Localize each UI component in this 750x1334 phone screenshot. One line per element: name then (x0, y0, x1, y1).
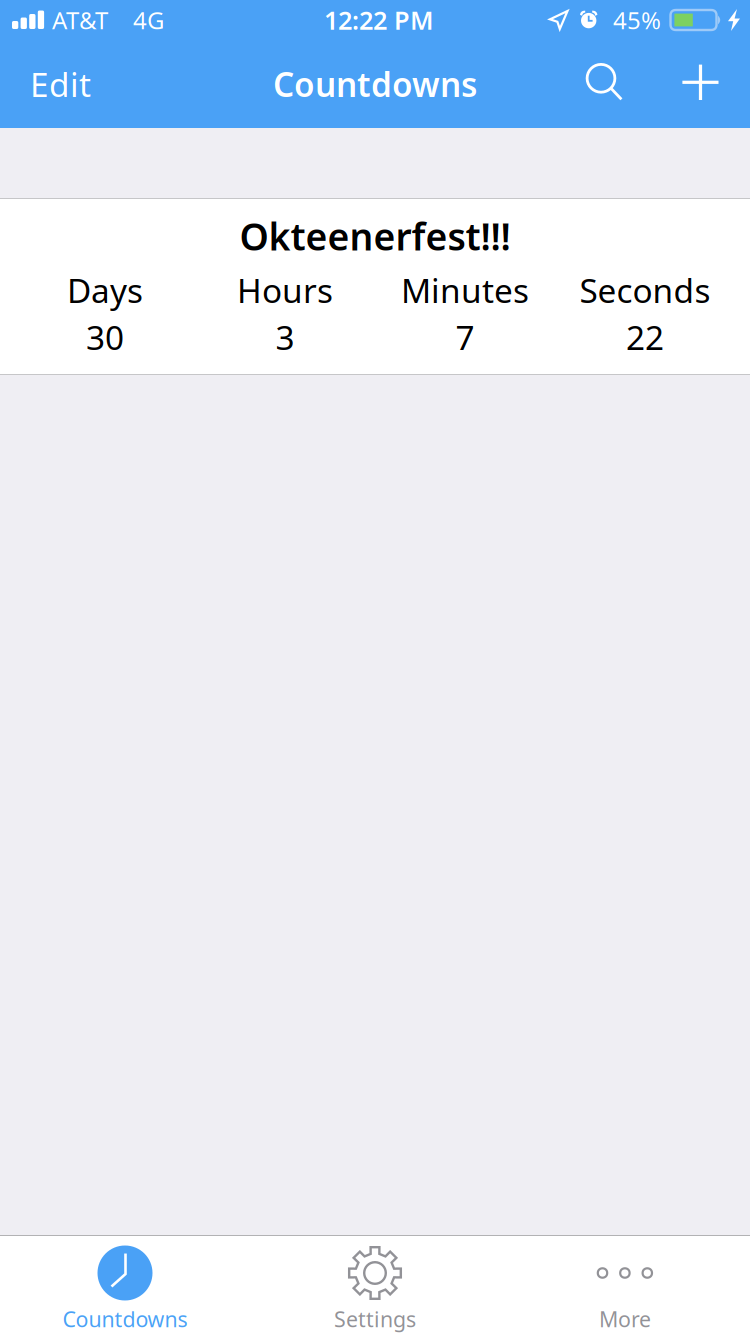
staticText: 22 (626, 315, 664, 359)
staticText: Okteenerfest!!! (239, 211, 510, 261)
staticText: Countdowns (273, 62, 477, 106)
button[interactable]: Countdowns (0, 1235, 250, 1334)
staticText: Settings (334, 1305, 416, 1333)
staticText: Minutes (401, 268, 529, 312)
staticText: AT&T (52, 4, 108, 36)
staticText: Days (67, 268, 143, 312)
button[interactable]: Settings (250, 1235, 500, 1334)
staticText: Countdowns (62, 1305, 187, 1333)
staticText: More (599, 1305, 651, 1333)
button[interactable]: Add Countdown (0, 40, 80, 128)
button[interactable]: Okteenerfest!!! (0, 199, 750, 374)
staticText: 3 (275, 315, 294, 359)
staticText: Seconds (579, 268, 710, 312)
staticText: Hours (237, 268, 333, 312)
button[interactable]: Edit (0, 40, 110, 128)
staticText: 7 (455, 315, 474, 359)
button[interactable]: More (500, 1235, 750, 1334)
staticText: 30 (86, 315, 124, 359)
staticText: Edit (30, 62, 91, 106)
staticText: 4G (133, 4, 164, 36)
staticText: 12:22 PM (324, 3, 434, 37)
staticText: 45% (613, 4, 661, 36)
button[interactable]: Search (0, 40, 78, 128)
